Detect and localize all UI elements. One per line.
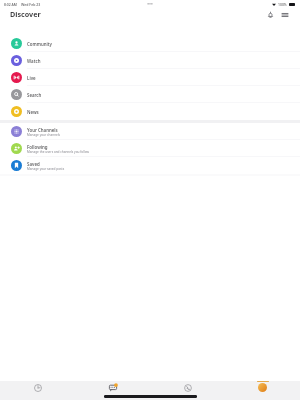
button[interactable]: Notifications bbox=[265, 10, 275, 20]
staticText: Live bbox=[27, 75, 36, 81]
staticText: Wed Feb 23 bbox=[21, 2, 41, 7]
staticText: Manage the users and channels you follow bbox=[27, 150, 90, 154]
staticText: 100% bbox=[278, 2, 287, 7]
button[interactable]: Community bbox=[0, 35, 300, 52]
staticText: Discover bbox=[10, 9, 41, 19]
staticText: Watch bbox=[27, 58, 41, 64]
button[interactable]: Watch bbox=[0, 52, 300, 69]
staticText: Saved bbox=[27, 161, 40, 167]
staticText: News bbox=[27, 109, 39, 115]
staticText: Manage your channels bbox=[27, 133, 61, 137]
button[interactable]: News bbox=[0, 103, 300, 120]
button[interactable]: Saved bbox=[0, 157, 300, 174]
button[interactable]: Live bbox=[0, 69, 300, 86]
button[interactable]: Following bbox=[0, 140, 300, 157]
button[interactable]: Search bbox=[0, 86, 300, 103]
staticText: Following bbox=[27, 144, 48, 150]
staticText: Community bbox=[27, 41, 52, 47]
staticText: 8:02 AM bbox=[4, 2, 17, 7]
button[interactable]: Profile bbox=[225, 381, 300, 400]
button[interactable]: Menu bbox=[280, 10, 290, 20]
button[interactable]: History bbox=[0, 381, 75, 400]
staticText: Your Channels bbox=[27, 127, 58, 133]
staticText: Search bbox=[27, 92, 42, 98]
staticText: Manage your saved posts bbox=[27, 167, 65, 171]
button[interactable]: Calls bbox=[150, 381, 225, 400]
button[interactable]: Messages bbox=[75, 381, 150, 400]
button[interactable]: Your Channels bbox=[0, 123, 300, 140]
